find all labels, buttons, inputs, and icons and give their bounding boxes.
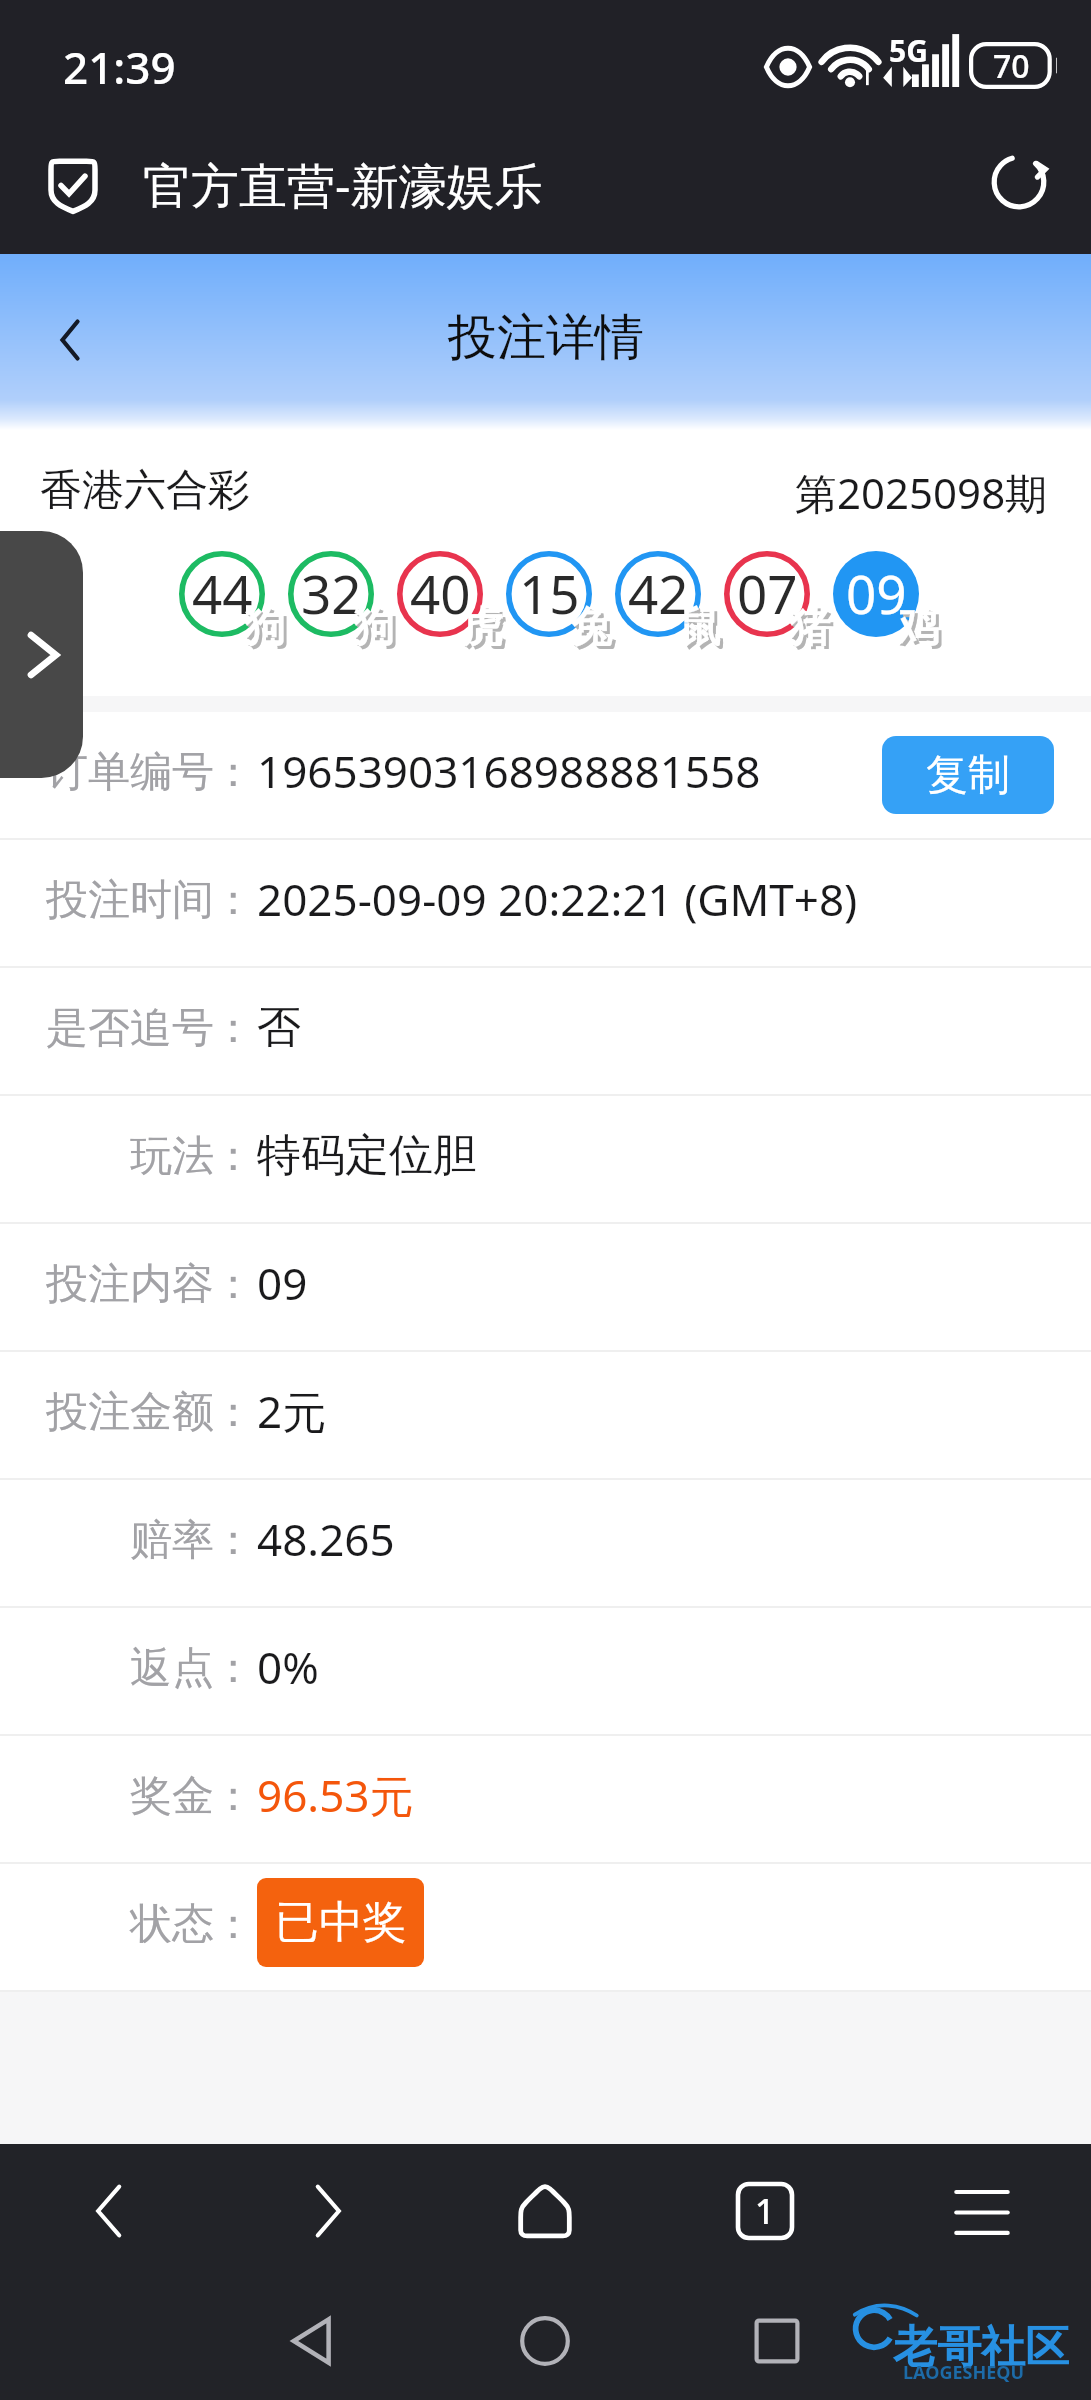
staticText: 否 [257, 1000, 301, 1055]
staticText: 奖金 [130, 1770, 214, 1823]
staticText: ： [212, 874, 254, 927]
button[interactable]: 复制 [882, 736, 1054, 814]
button[interactable]: 已中奖 [257, 1878, 424, 1967]
button[interactable]: System home [502, 2298, 588, 2384]
staticText: 状态 [130, 1898, 214, 1951]
staticText: ： [212, 1514, 254, 1567]
staticText: ： [212, 1002, 254, 1055]
staticText: 19653903168988881558 [257, 741, 761, 801]
staticText: 44 [192, 557, 253, 629]
staticText: 1 [755, 2188, 775, 2234]
staticText: 鼠 [680, 602, 721, 654]
staticText: 玩法 [130, 1130, 214, 1183]
staticText: 复制 [926, 749, 1010, 802]
staticText: 订单编号 [46, 746, 214, 799]
staticText: 鼠 [683, 605, 724, 657]
staticText: 投注时间 [46, 874, 214, 927]
staticText: 5G [889, 30, 928, 71]
staticText: 投注详情 [448, 307, 644, 369]
staticText: 猪 [792, 605, 833, 657]
staticText: 是否追号 [46, 1002, 214, 1055]
staticText: 2025-09-09 20:22:21 (GMT+8) [257, 869, 858, 929]
staticText: ： [212, 1130, 254, 1183]
staticText: 投注内容 [46, 1258, 214, 1311]
staticText: 鸡 [901, 605, 942, 657]
staticText: 70 [993, 44, 1030, 88]
staticText: ： [212, 1770, 254, 1823]
staticText: 虎 [462, 602, 503, 654]
staticText: LAOGESHEQU [903, 2360, 1025, 2385]
staticText: 官方直营-新濠娱乐 [143, 152, 543, 218]
staticText: 2元 [257, 1381, 327, 1441]
button[interactable]: System back [270, 2298, 356, 2384]
staticText: ： [212, 1642, 254, 1695]
staticText: ： [212, 1386, 254, 1439]
staticText: 48.265 [257, 1509, 395, 1569]
staticText: 狗 [353, 602, 394, 654]
staticText: 96.53元 [257, 1765, 414, 1825]
staticText: 09 [846, 557, 907, 629]
staticText: 32 [301, 557, 362, 629]
button[interactable]: Refresh [979, 142, 1059, 222]
button[interactable]: Tabs [722, 2168, 808, 2254]
staticText: 07 [737, 557, 798, 629]
staticText: ： [212, 1258, 254, 1311]
staticText: 鸡 [898, 602, 939, 654]
staticText: 特码定位胆 [257, 1128, 477, 1183]
staticText: 狗 [244, 602, 285, 654]
staticText: ： [212, 1898, 254, 1951]
button[interactable]: Back [67, 2168, 153, 2254]
staticText: 兔 [574, 605, 615, 657]
staticText: 21:39 [63, 37, 176, 97]
button[interactable]: Home [502, 2168, 588, 2254]
staticText: 15 [519, 557, 580, 629]
button[interactable]: Menu [939, 2168, 1025, 2254]
staticText: 返点 [130, 1642, 214, 1695]
staticText: 狗 [356, 605, 397, 657]
staticText: 第2025098期 [795, 464, 1048, 521]
staticText: 0% [257, 1637, 319, 1697]
staticText: 兔 [571, 602, 612, 654]
staticText: 狗 [247, 605, 288, 657]
staticText: 投注金额 [46, 1386, 214, 1439]
staticText: 老哥社区 [893, 2320, 1069, 2375]
staticText: 已中奖 [275, 1895, 407, 1950]
staticText: 40 [410, 557, 471, 629]
staticText: 猪 [789, 602, 830, 654]
staticText: ： [212, 746, 254, 799]
staticText: 香港六合彩 [40, 464, 250, 517]
staticText: 09 [257, 1253, 308, 1313]
button[interactable]: Recents [734, 2298, 820, 2384]
staticText: 42 [628, 557, 689, 629]
button[interactable]: Forward [284, 2168, 370, 2254]
button[interactable]: Back [29, 299, 111, 381]
button[interactable]: Expand panel [0, 531, 83, 778]
staticText: 赔率 [130, 1514, 214, 1567]
staticText: 虎 [465, 605, 506, 657]
